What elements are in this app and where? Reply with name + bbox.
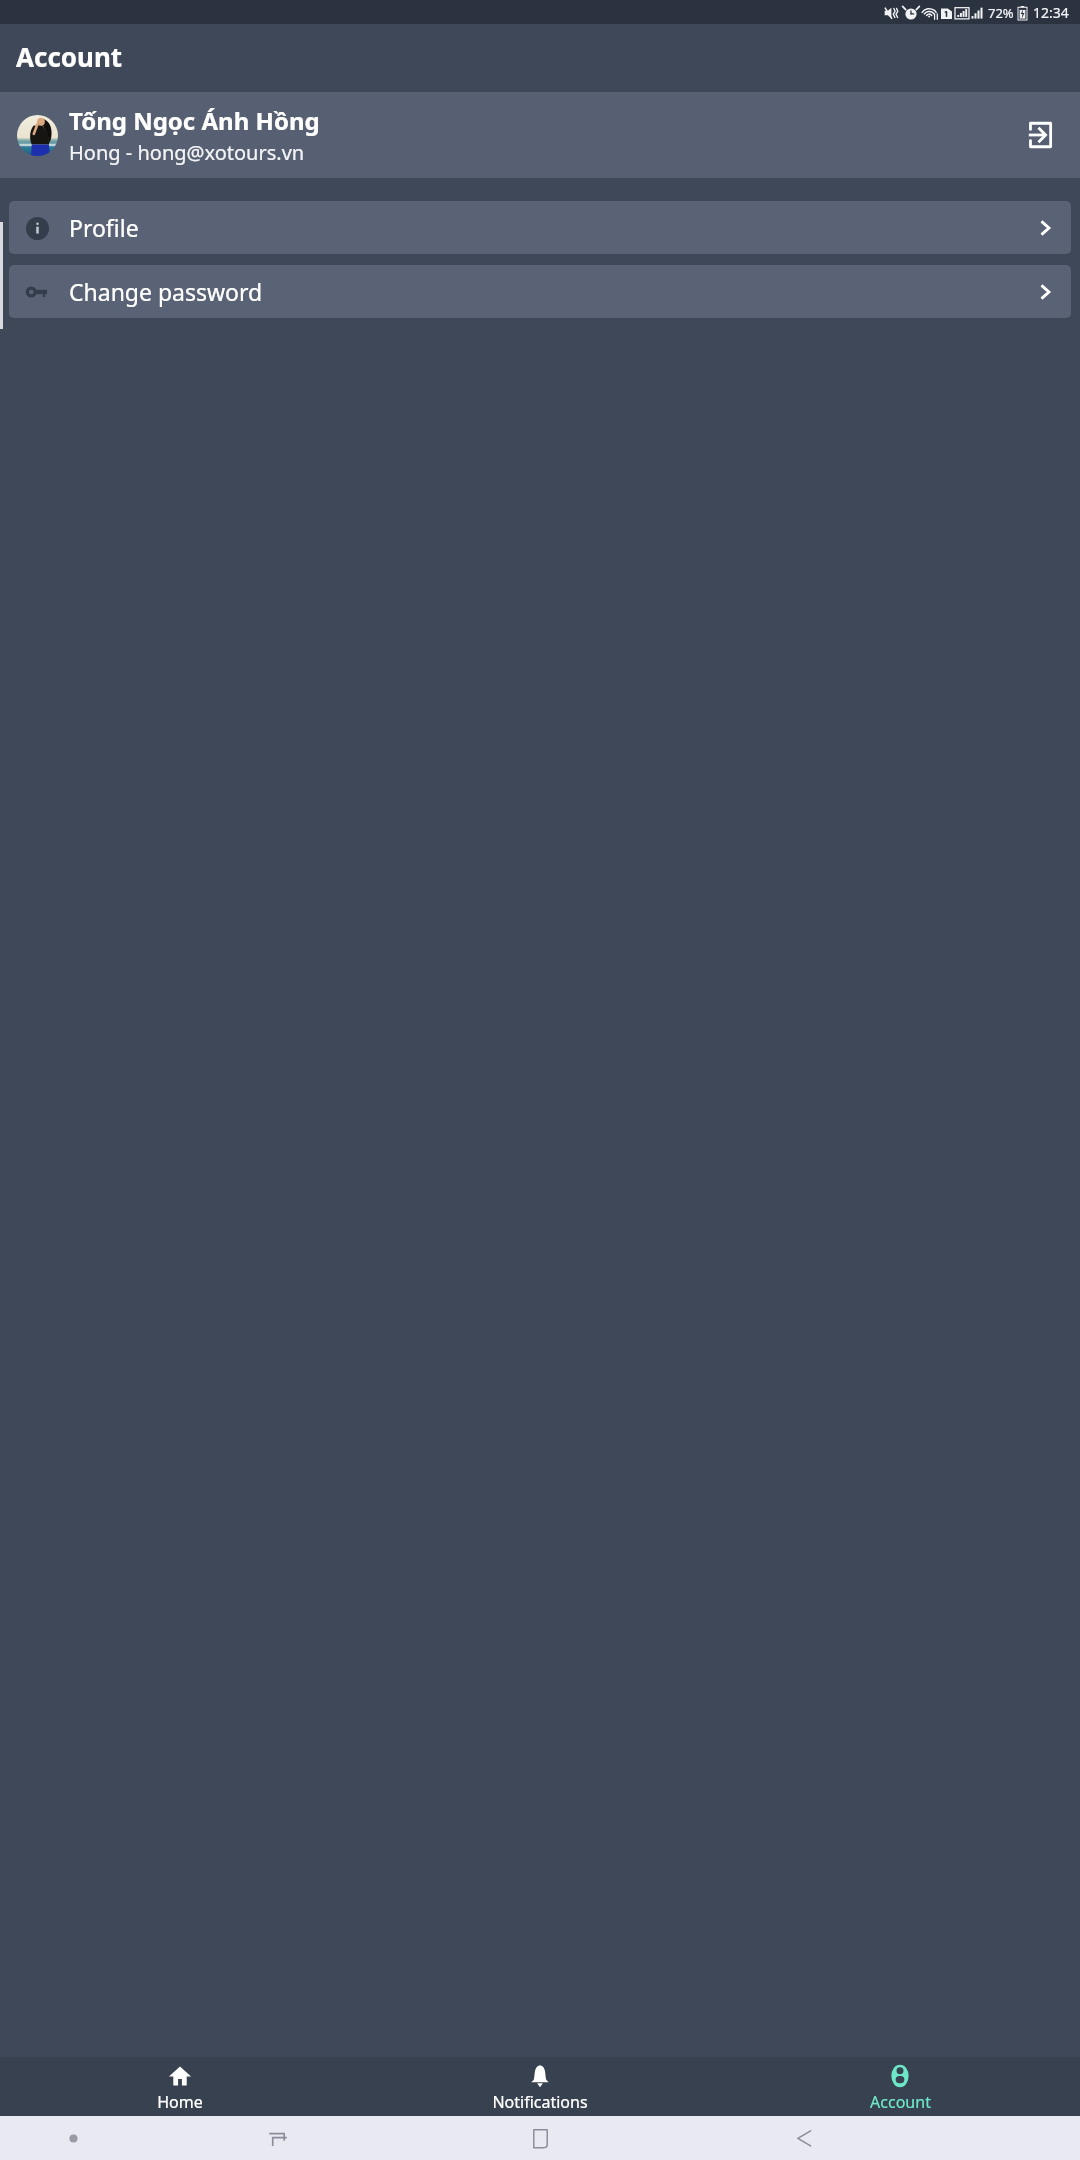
staticText: Tống Ngọc Ánh Hồng xyxy=(69,104,320,137)
staticText: Account xyxy=(16,39,123,74)
button[interactable]: Home xyxy=(0,2057,360,2116)
button[interactable]: Recents xyxy=(146,2116,409,2160)
button[interactable]: Change password xyxy=(9,265,1071,318)
button[interactable]: Account xyxy=(720,2057,1080,2116)
staticText: Profile xyxy=(69,212,1034,243)
button[interactable]: Profile xyxy=(9,201,1071,254)
button[interactable]: Log out xyxy=(1017,112,1063,158)
staticText: 12:34 xyxy=(1033,3,1069,22)
staticText: Hong - hong@xotours.vn xyxy=(69,139,305,166)
staticText: Notifications xyxy=(492,2091,588,2113)
button[interactable]: Tống Ngọc Ánh Hồng xyxy=(0,92,1080,178)
staticText: Change password xyxy=(69,276,1034,307)
staticText: Home xyxy=(157,2091,203,2113)
button[interactable]: Back xyxy=(672,2116,935,2160)
button[interactable]: Notifications xyxy=(360,2057,720,2116)
staticText: Account xyxy=(870,2091,931,2113)
button[interactable]: Home xyxy=(409,2116,672,2160)
staticText: 72% xyxy=(988,4,1014,22)
